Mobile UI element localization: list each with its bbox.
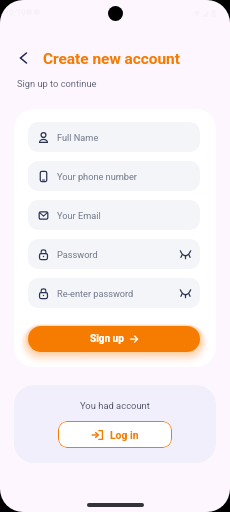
button[interactable]: Password — [28, 239, 200, 269]
button[interactable]: Log in — [58, 421, 172, 448]
staticText: Password — [57, 249, 98, 260]
staticText: Your Email — [57, 210, 101, 221]
staticText: Your phone number — [57, 171, 137, 182]
button[interactable]: Show password — [177, 285, 193, 301]
button[interactable]: Back — [13, 47, 33, 69]
staticText: You had account — [80, 400, 150, 411]
staticText: Full Name — [57, 132, 99, 143]
button[interactable]: Full Name — [28, 122, 200, 152]
button[interactable]: Your phone number — [28, 161, 200, 191]
button[interactable]: Sign up — [28, 326, 200, 352]
staticText: Create new account — [43, 50, 180, 68]
staticText: Sign up to continue — [17, 78, 97, 89]
button[interactable]: Show password — [177, 246, 193, 262]
staticText: Re-enter password — [57, 288, 134, 299]
button[interactable]: Your Email — [28, 200, 200, 230]
staticText: Sign up — [90, 333, 124, 345]
button[interactable]: Re-enter password — [28, 278, 200, 308]
staticText: Log in — [110, 429, 139, 441]
